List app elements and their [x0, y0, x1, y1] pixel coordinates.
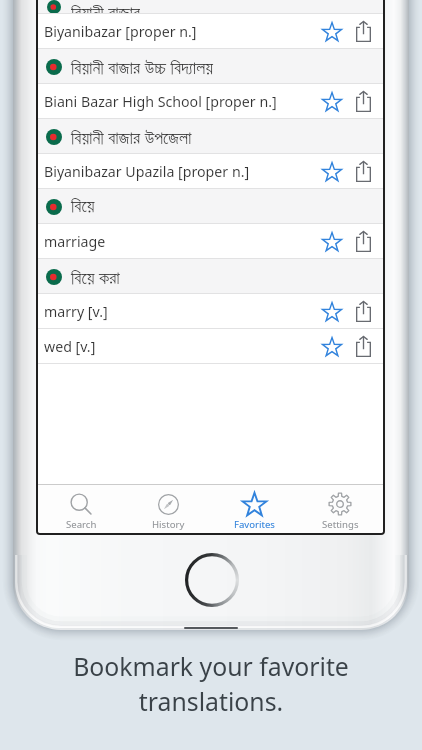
staticText: Search	[66, 518, 97, 531]
button[interactable]: বিয়ে	[38, 189, 383, 224]
staticText: marriage	[44, 232, 316, 251]
staticText: বিয়ে করা	[71, 265, 120, 289]
button[interactable]: Favorite	[316, 329, 346, 364]
button[interactable]: Favorite	[316, 224, 346, 259]
staticText: History	[152, 518, 185, 531]
staticText: Settings	[322, 518, 359, 531]
staticText: Biyanibazar [proper n.]	[44, 22, 316, 41]
staticText: Favorites	[234, 518, 275, 531]
button[interactable]: বিয়ানী বাজার	[38, 0, 383, 14]
button[interactable]: marry [v.]	[38, 294, 383, 329]
staticText: wed [v.]	[44, 337, 316, 356]
button[interactable]: বিয়ানী বাজার উপজেলা	[38, 119, 383, 154]
button[interactable]: Home	[185, 553, 239, 607]
button[interactable]: wed [v.]	[38, 329, 383, 364]
button[interactable]: Share	[348, 154, 378, 189]
button[interactable]: Share	[348, 224, 378, 259]
button[interactable]: Settings	[297, 484, 383, 533]
staticText: marry [v.]	[44, 302, 316, 321]
button[interactable]: Share	[348, 294, 378, 329]
button[interactable]: বিয়ে করা	[38, 259, 383, 294]
staticText: বিয়ানী বাজার উচ্চ বিদ্যালয়	[71, 55, 213, 79]
button[interactable]: বিয়ানী বাজার উচ্চ বিদ্যালয়	[38, 49, 383, 84]
button[interactable]: History	[125, 484, 211, 533]
button[interactable]: Share	[348, 329, 378, 364]
button[interactable]: Biyanibazar [proper n.]	[38, 14, 383, 49]
button[interactable]: Biyanibazar Upazila [proper n.]	[38, 154, 383, 189]
button[interactable]: Biani Bazar High School [proper n.]	[38, 84, 383, 119]
staticText: Bookmark your favorite translations.	[0, 649, 422, 719]
staticText: Biyanibazar Upazila [proper n.]	[44, 162, 316, 181]
button[interactable]: Share	[348, 84, 378, 119]
button[interactable]: Favorite	[316, 14, 346, 49]
staticText: Biani Bazar High School [proper n.]	[44, 92, 316, 111]
staticText: বিয়ে	[71, 198, 95, 216]
button[interactable]: Favorite	[316, 84, 346, 119]
button[interactable]: Favorite	[316, 154, 346, 189]
button[interactable]: marriage	[38, 224, 383, 259]
button[interactable]: Search	[38, 484, 125, 533]
staticText: বিয়ানী বাজার উপজেলা	[71, 125, 192, 149]
button[interactable]: Share	[348, 14, 378, 49]
button[interactable]: Favorites	[211, 484, 297, 533]
button[interactable]: Favorite	[316, 294, 346, 329]
staticText: বিয়ানী বাজার	[71, 0, 140, 14]
